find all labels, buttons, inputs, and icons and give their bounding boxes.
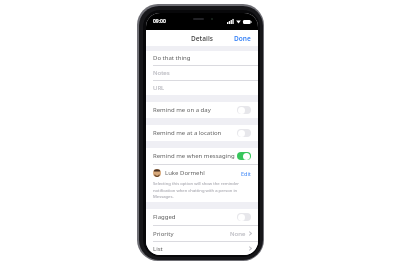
button[interactable]: Notes bbox=[146, 66, 258, 80]
staticText: URL bbox=[153, 84, 165, 92]
staticText: Notes bbox=[153, 69, 170, 77]
button[interactable]: Done bbox=[227, 31, 258, 46]
staticText: 09:00 bbox=[153, 18, 166, 25]
staticText: Selecting this option will show the remi… bbox=[153, 181, 253, 199]
staticText: None bbox=[230, 230, 246, 238]
staticText: Remind me when messaging bbox=[153, 152, 235, 160]
staticText: List bbox=[153, 245, 163, 253]
staticText: Do that thing bbox=[153, 54, 191, 62]
staticText: Remind me at a location bbox=[153, 129, 222, 137]
button[interactable]: URL bbox=[146, 81, 258, 95]
staticText: Flagged bbox=[153, 213, 176, 221]
button[interactable]: Do that thing bbox=[146, 51, 258, 65]
staticText: Luke Dormehl bbox=[165, 169, 205, 177]
button[interactable]: Luke Dormehl bbox=[146, 165, 258, 181]
button[interactable]: Switch off bbox=[237, 213, 251, 221]
button[interactable]: Remind me on a day bbox=[146, 102, 258, 118]
button[interactable]: Switch on bbox=[237, 152, 251, 160]
staticText: Done bbox=[234, 34, 251, 43]
button[interactable]: Flagged bbox=[146, 209, 258, 225]
button[interactable]: Switch off bbox=[237, 129, 251, 137]
staticText: Edit bbox=[241, 170, 251, 177]
staticText: Priority bbox=[153, 230, 174, 238]
staticText: Details bbox=[191, 34, 213, 43]
button[interactable]: List bbox=[146, 242, 258, 255]
button[interactable]: Priority bbox=[146, 226, 258, 241]
button[interactable]: Remind me when messaging bbox=[146, 148, 258, 164]
button[interactable]: Remind me at a location bbox=[146, 125, 258, 141]
staticText: Remind me on a day bbox=[153, 106, 211, 114]
button[interactable]: Switch off bbox=[237, 106, 251, 114]
